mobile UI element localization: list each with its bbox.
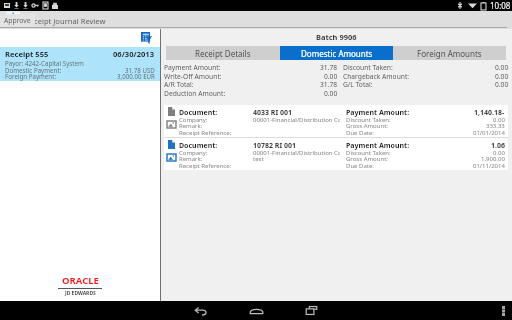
button[interactable]: Approve — [0, 14, 507, 28]
button[interactable]: Back — [181, 301, 221, 320]
staticText: 01/01/2014 — [473, 129, 505, 137]
staticText: 31.78 — [320, 80, 338, 89]
button[interactable]: Document: — [164, 105, 508, 137]
staticText: G/L Total: — [343, 80, 373, 89]
staticText: Due Date: — [346, 162, 374, 170]
staticText: 0.00 — [495, 72, 509, 81]
staticText: Receipt Reference: — [179, 162, 232, 170]
button[interactable]: Back — [0, 11, 6, 29]
button[interactable]: Receipt Details — [166, 46, 280, 60]
button[interactable]: Receipt 555 — [0, 47, 160, 81]
staticText: 10:08 — [490, 0, 511, 11]
button[interactable]: Document: — [164, 138, 508, 170]
button[interactable]: Foreign Amounts — [393, 46, 506, 60]
button[interactable]: More options — [494, 301, 512, 320]
staticText: 10782 RI 001 — [253, 141, 296, 151]
staticText: 1.06 — [491, 141, 505, 151]
staticText: Gross Amount: — [346, 122, 388, 130]
button[interactable]: Filter — [138, 30, 154, 46]
staticText: Foreign Payment: — [5, 72, 57, 80]
staticText: Chargeback Amount: — [343, 72, 410, 81]
staticText: Receipt Details — [195, 48, 251, 59]
staticText: Discount Taken: — [343, 63, 393, 72]
staticText: test — [253, 155, 264, 163]
button[interactable]: Home — [236, 301, 276, 320]
staticText: Payment Amount: — [346, 141, 410, 151]
staticText: ORACLE — [62, 274, 99, 287]
staticText: Receipt Reference: — [179, 129, 232, 137]
staticText: Remark: — [179, 122, 203, 130]
staticText: 3,000.00 EUR — [117, 72, 155, 80]
staticText: Gross Amount: — [346, 155, 388, 163]
staticText: 333.33 — [486, 122, 505, 130]
staticText: Receipt 555 — [5, 49, 49, 59]
staticText: 06/30/2013 — [113, 49, 155, 59]
staticText: Discount Taken: — [346, 116, 391, 124]
staticText: Remark: — [179, 155, 203, 163]
staticText: 0.00 — [324, 72, 338, 81]
staticText: Due Date: — [346, 129, 374, 137]
staticText: Company: — [179, 149, 208, 157]
staticText: A/R Total: — [164, 80, 194, 89]
staticText: 4033 RI 001 — [253, 108, 292, 118]
staticText: Discount Taken: — [346, 149, 391, 157]
staticText: Approve — [4, 16, 31, 25]
staticText: Payor: 4242-Capital System — [5, 59, 84, 67]
button[interactable]: Domestic Amounts — [280, 46, 393, 60]
button[interactable]: Recent apps — [291, 301, 331, 320]
staticText: 1,140.18- — [474, 108, 505, 118]
staticText: Write-Off Amount: — [164, 72, 222, 81]
staticText: 00001-Financial/Distribution Comp — [253, 116, 340, 124]
staticText: Document: — [179, 141, 218, 151]
staticText: 0.00 — [493, 116, 505, 124]
staticText: 01/11/2014 — [473, 162, 505, 170]
staticText: 0.00 — [495, 80, 509, 89]
staticText: 1,900.00 — [481, 155, 505, 163]
staticText: Document: — [179, 108, 218, 118]
staticText: Receipt Journal Review — [25, 16, 106, 26]
staticText: Payment Amount: — [164, 63, 221, 72]
staticText: 0.00 — [493, 149, 505, 157]
staticText: Batch 9906 — [316, 32, 357, 42]
staticText: 0.00 — [495, 63, 509, 72]
staticText: Domestic Amounts — [301, 48, 373, 59]
staticText: 31.78 — [320, 63, 338, 72]
staticText: Payment Amount: — [346, 108, 410, 118]
staticText: 00001-Financial/Distribution Comp — [253, 149, 340, 157]
staticText: Domestic Payment: — [5, 66, 62, 74]
staticText: Foreign Amounts — [417, 48, 482, 59]
staticText: Company: — [179, 116, 208, 124]
staticText: JD EDWARDS — [65, 290, 96, 297]
staticText: 0.00 — [324, 89, 338, 98]
staticText: Deduction Amount: — [164, 89, 226, 98]
staticText: 31.78 USD — [125, 66, 155, 74]
